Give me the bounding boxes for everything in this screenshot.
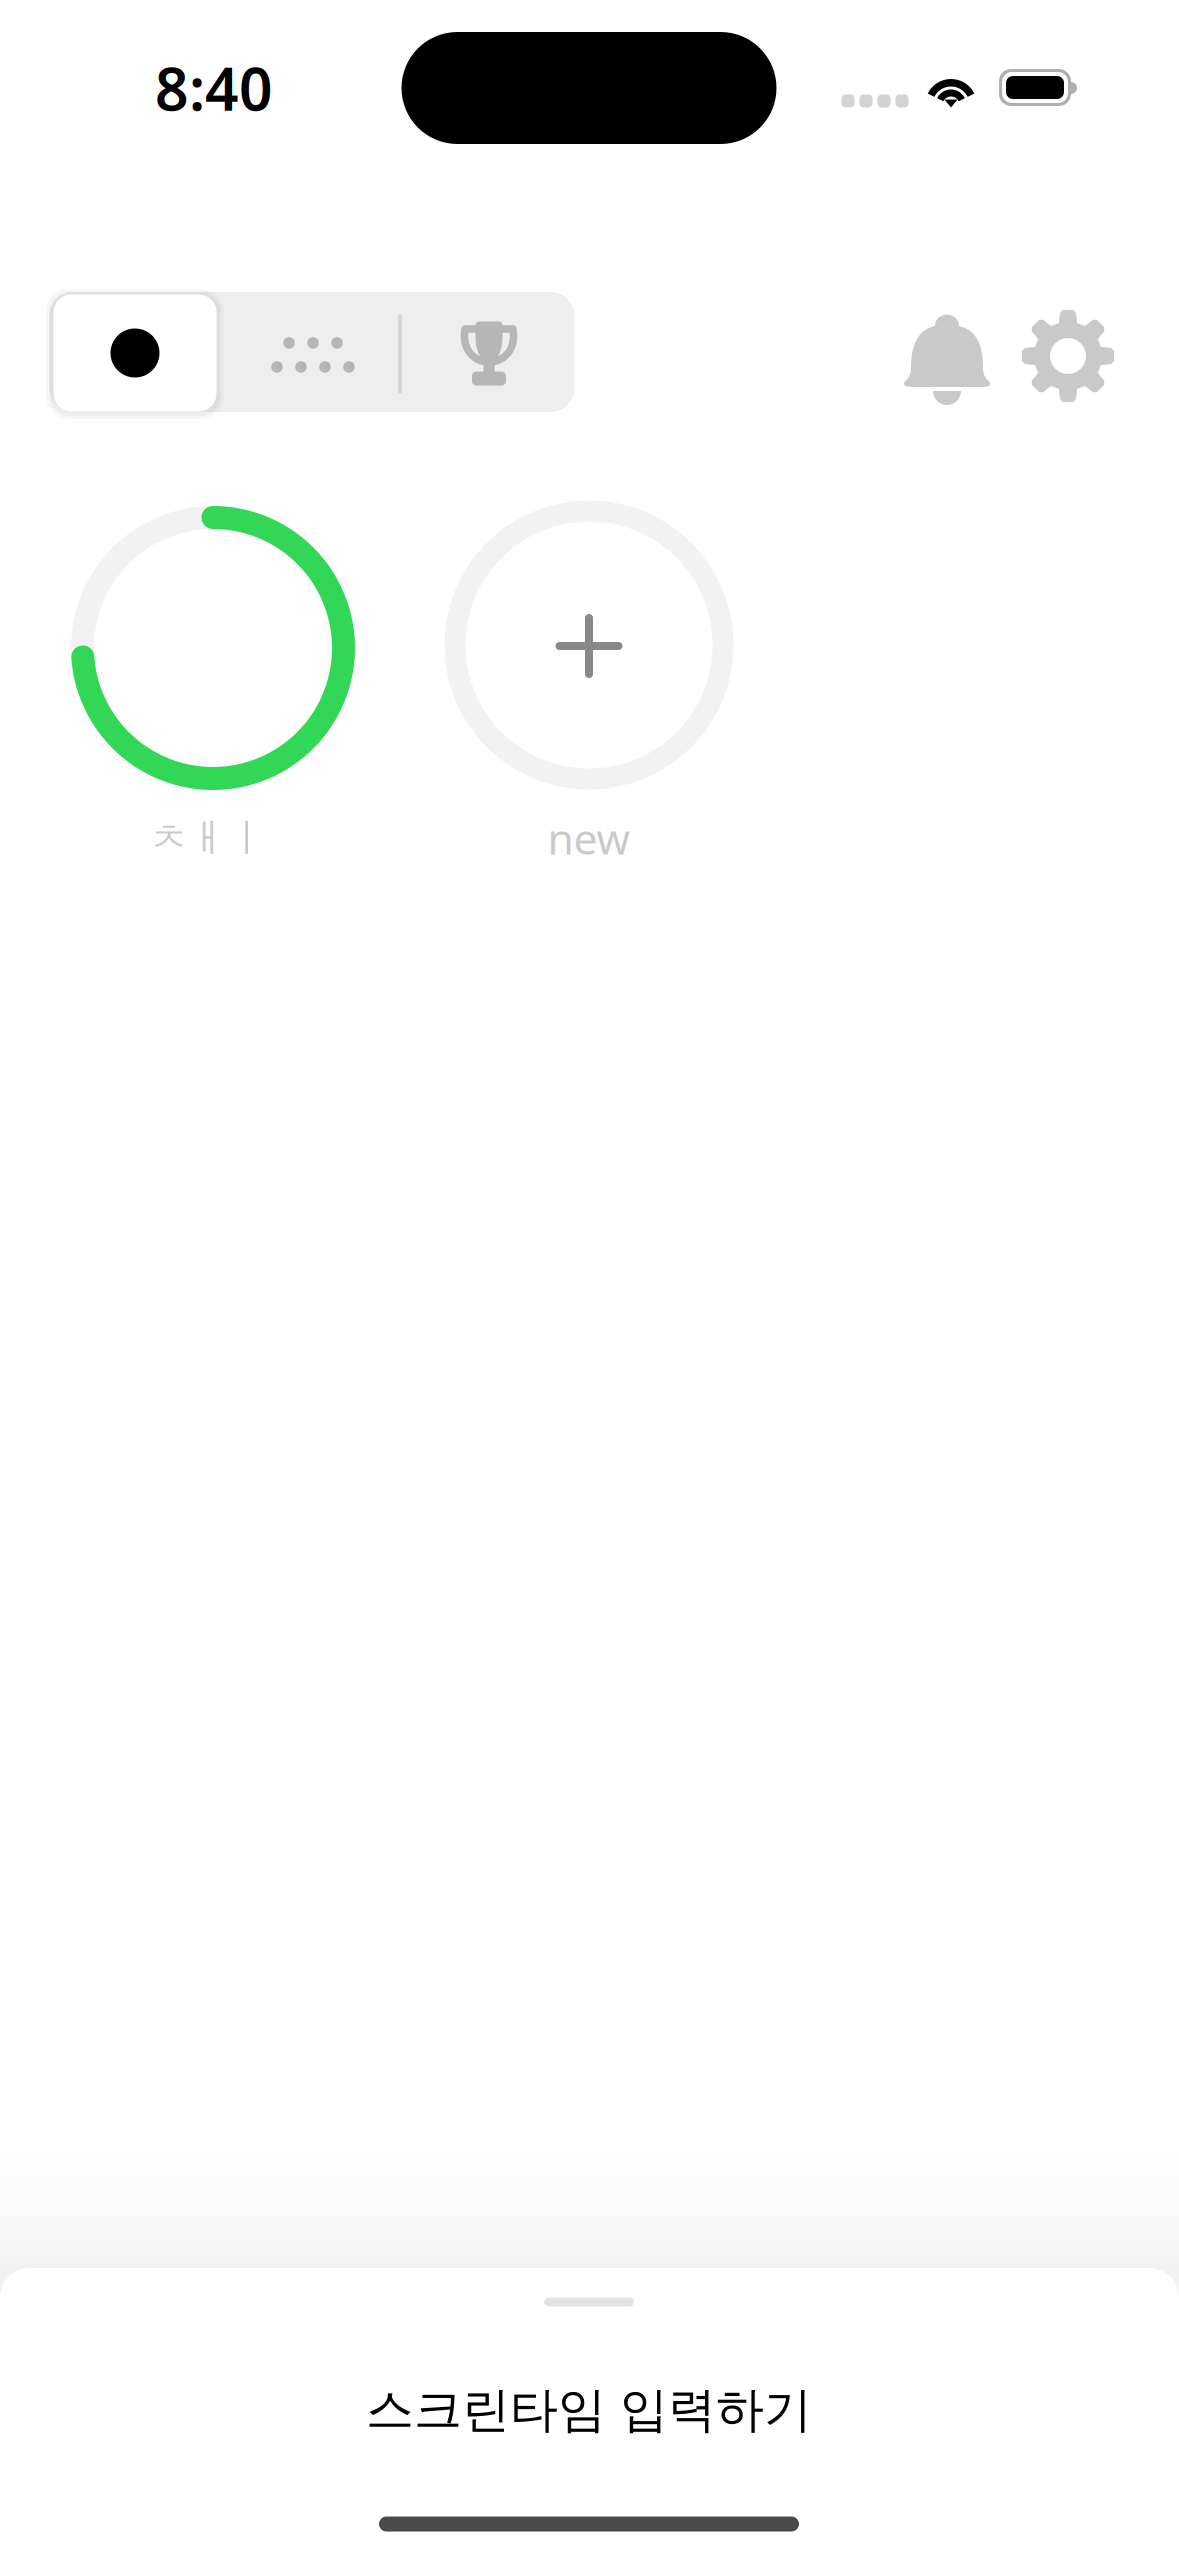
button[interactable]: Today (53, 294, 216, 411)
staticText: new (547, 810, 630, 866)
button[interactable]: Leaderboard (460, 320, 517, 385)
staticText: 8:40 (155, 49, 273, 127)
button[interactable]: Screen time progress (71, 506, 355, 790)
button[interactable]: Notifications (905, 306, 989, 398)
staticText: ㅊㅐㅣ (149, 814, 266, 862)
button[interactable]: Settings (1022, 310, 1113, 402)
staticText: 스크린타임 입력하기 (366, 2380, 812, 2439)
button[interactable]: Add new (444, 500, 733, 789)
button[interactable]: Friends (277, 337, 355, 373)
